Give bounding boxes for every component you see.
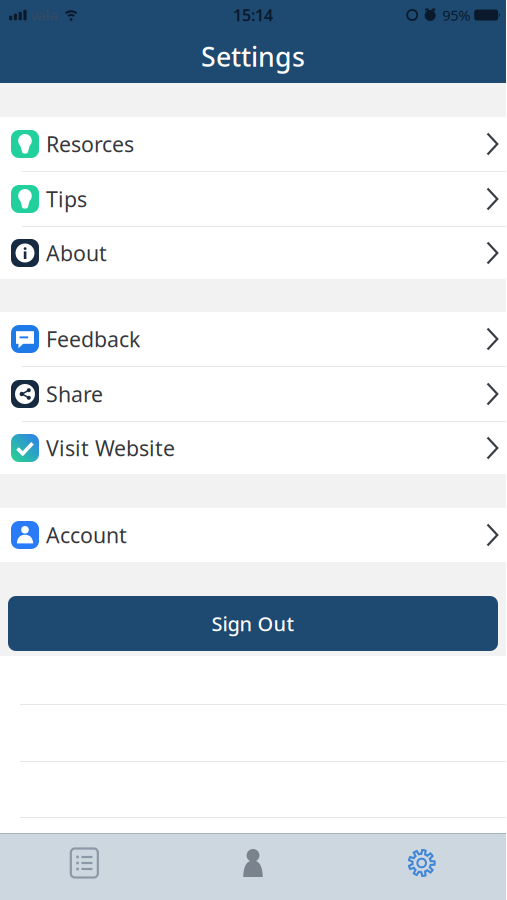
button[interactable]: About <box>0 227 506 279</box>
button[interactable]: Account <box>0 508 506 562</box>
staticText: 95% <box>442 5 470 25</box>
staticText: About <box>46 239 107 267</box>
staticText: 15:14 <box>233 4 273 26</box>
staticText: vala <box>31 5 58 25</box>
staticText: Tips <box>46 185 87 213</box>
staticText: Visit Website <box>46 434 175 462</box>
staticText: Sign Out <box>211 610 294 637</box>
staticText: Account <box>46 521 127 549</box>
staticText: Share <box>46 380 103 408</box>
button[interactable]: Share <box>0 367 506 421</box>
button[interactable]: Tips <box>0 172 506 226</box>
button[interactable]: Visit Website <box>0 422 506 474</box>
button[interactable]: Settings <box>337 848 506 878</box>
staticText: Settings <box>201 39 305 74</box>
staticText: Resorces <box>46 130 134 158</box>
button[interactable]: Feedback <box>0 312 506 366</box>
button[interactable]: Resorces <box>0 117 506 171</box>
button[interactable]: Sign Out <box>8 596 498 651</box>
staticText: Feedback <box>46 325 140 353</box>
button[interactable]: Forms <box>0 848 169 878</box>
button[interactable]: Profile <box>169 848 337 878</box>
